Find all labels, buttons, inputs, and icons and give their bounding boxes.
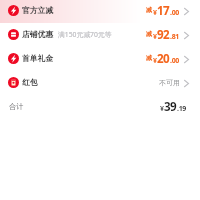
staticText: 首单礼金 — [22, 53, 54, 63]
staticText: 不可用 — [159, 78, 180, 87]
staticText: .00 — [170, 56, 180, 66]
staticText: .19 — [177, 104, 187, 114]
staticText: 红包 — [22, 77, 38, 87]
staticText: 官方立减 — [22, 5, 54, 15]
staticText: 满150元减70元等 — [58, 30, 112, 39]
button[interactable]: 店铺优惠 — [0, 23, 200, 47]
staticText: 减 — [146, 54, 153, 62]
staticText: ¥ — [153, 56, 157, 66]
staticText: .00 — [170, 8, 180, 18]
staticText: ¥ — [160, 104, 164, 114]
staticText: .81 — [170, 32, 180, 42]
staticText: ¥ — [153, 8, 157, 18]
button[interactable]: 首单礼金 — [0, 47, 200, 71]
staticText: 减 — [146, 6, 153, 14]
staticText: 20 — [157, 51, 170, 67]
button[interactable]: 红包 — [0, 71, 200, 95]
staticText: ¥ — [153, 32, 157, 42]
button[interactable]: 官方立减 — [0, 0, 200, 23]
staticText: 减 — [146, 30, 153, 38]
staticText: 合计 — [9, 102, 24, 111]
staticText: 92 — [157, 27, 170, 43]
staticText: 17 — [157, 3, 170, 19]
staticText: 39 — [164, 99, 177, 115]
staticText: 店铺优惠 — [22, 29, 54, 39]
